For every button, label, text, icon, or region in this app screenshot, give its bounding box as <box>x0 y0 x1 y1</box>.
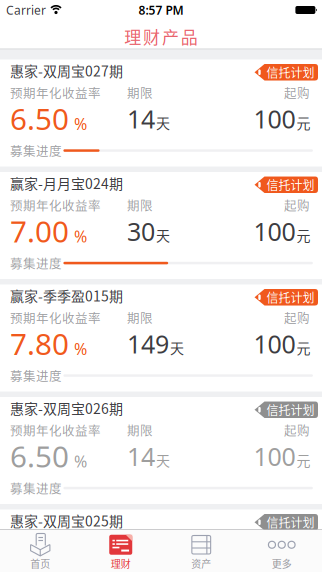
staticText: 信托计划 <box>266 176 314 193</box>
staticText: 7.00 <box>10 211 69 251</box>
staticText: 预期年化收益率 <box>10 83 101 102</box>
staticText: 惠家-双周宝026期 <box>10 398 123 418</box>
staticText: 7.80 <box>10 323 69 364</box>
staticText: 天 <box>156 450 170 470</box>
staticText: 100 <box>253 102 295 136</box>
staticText: 天 <box>156 225 170 245</box>
button[interactable]: 惠家-双周宝027期 <box>0 59 322 166</box>
staticText: 期限 <box>127 83 153 102</box>
staticText: 期限 <box>127 533 153 552</box>
staticText: 赢家-季季盈015期 <box>10 285 123 306</box>
staticText: 信托计划 <box>266 401 314 418</box>
staticText: 理财产品 <box>124 24 198 48</box>
staticText: 100 <box>253 214 295 248</box>
button[interactable]: 理财 <box>80 530 161 572</box>
staticText: 预期年化收益率 <box>10 308 101 327</box>
button[interactable]: 更多 <box>241 530 322 572</box>
staticText: 元 <box>296 337 310 358</box>
staticText: 预期年化收益率 <box>10 196 101 214</box>
staticText: 元 <box>296 225 310 245</box>
staticText: 募集进度 <box>10 479 62 497</box>
staticText: 100 <box>253 439 295 473</box>
staticText: 募集进度 <box>10 141 62 160</box>
staticText: % <box>74 225 87 247</box>
staticText: 募集进度 <box>10 254 62 272</box>
staticText: 30 <box>127 214 155 248</box>
staticText: 期限 <box>127 421 153 439</box>
staticText: 理财 <box>111 556 131 571</box>
staticText: 首页 <box>30 556 50 571</box>
staticText: % <box>74 338 87 360</box>
staticText: 元 <box>296 112 310 133</box>
staticText: Carrier <box>6 2 46 18</box>
staticText: 100 <box>253 327 295 361</box>
staticText: 起购 <box>284 308 310 327</box>
staticText: 信托计划 <box>266 64 314 81</box>
button[interactable]: 赢家-月月宝024期 <box>0 172 322 279</box>
button[interactable]: 惠家-双周宝025期 <box>0 509 322 572</box>
staticText: 预期年化收益率 <box>10 421 101 439</box>
staticText: 6.50 <box>10 98 69 139</box>
staticText: 元 <box>296 450 310 470</box>
staticText: 信托计划 <box>266 514 314 531</box>
staticText: 期限 <box>127 196 153 214</box>
staticText: 14 <box>127 439 155 473</box>
staticText: 惠家-双周宝027期 <box>10 60 123 81</box>
staticText: 募集进度 <box>10 366 62 385</box>
staticText: 天 <box>156 112 170 132</box>
staticText: 8:57 PM <box>138 2 183 18</box>
button[interactable]: 资产 <box>161 530 241 572</box>
staticText: 更多 <box>272 556 292 571</box>
staticText: 惠家-双周宝025期 <box>10 510 123 531</box>
staticText: 6.50 <box>10 436 69 476</box>
staticText: 6.50 <box>10 548 69 572</box>
staticText: % <box>74 450 87 472</box>
staticText: 14 <box>127 102 155 136</box>
staticText: 起购 <box>284 533 310 552</box>
staticText: 期限 <box>127 308 153 327</box>
staticText: 起购 <box>284 196 310 214</box>
staticText: 资产 <box>191 556 211 571</box>
button[interactable]: 惠家-双周宝026期 <box>0 397 322 504</box>
staticText: 14 <box>127 552 155 572</box>
staticText: 预期年化收益率 <box>10 533 101 552</box>
staticText: 信托计划 <box>266 289 314 306</box>
staticText: 100 <box>253 552 295 572</box>
staticText: 起购 <box>284 421 310 439</box>
button[interactable]: 赢家-季季盈015期 <box>0 284 322 391</box>
staticText: 起购 <box>284 83 310 102</box>
button[interactable]: 首页 <box>0 530 80 572</box>
staticText: % <box>74 113 87 135</box>
staticText: 149 <box>127 327 169 361</box>
staticText: 天 <box>170 337 184 357</box>
staticText: 赢家-月月宝024期 <box>10 173 123 193</box>
